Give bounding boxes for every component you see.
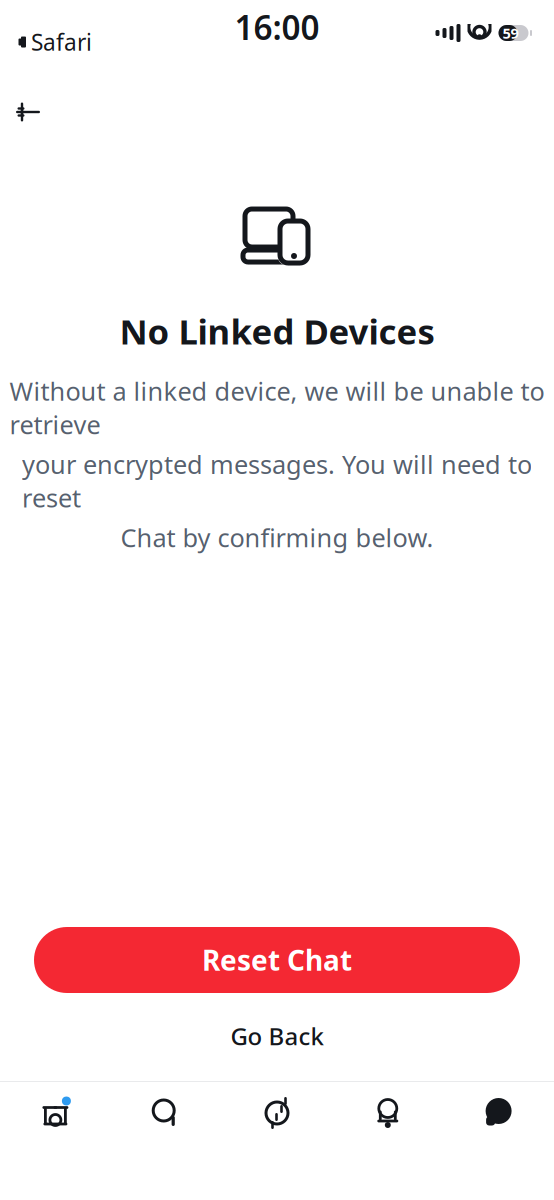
button[interactable]: Reset Chat <box>34 927 520 993</box>
button[interactable]: Search <box>111 1082 222 1144</box>
button[interactable]: Go Back <box>0 1019 554 1053</box>
button[interactable]: Messages <box>443 1082 554 1144</box>
staticText: 59 <box>502 23 518 43</box>
staticText: No Linked Devices <box>119 308 434 354</box>
staticText: 16:00 <box>234 5 319 49</box>
staticText: Go Back <box>230 1020 323 1052</box>
button[interactable]: Back <box>0 86 56 138</box>
staticText: your encrypted messages. You will need t… <box>22 447 532 515</box>
staticText: Safari <box>31 27 92 57</box>
button[interactable]: Notifications <box>332 1082 443 1144</box>
button[interactable]: Home <box>0 1082 111 1144</box>
staticText: Without a linked device, we will be unab… <box>9 374 544 441</box>
staticText: Reset Chat <box>202 941 352 979</box>
staticText: Chat by confirming below. <box>120 521 433 554</box>
button[interactable]: Explore <box>222 1082 332 1144</box>
